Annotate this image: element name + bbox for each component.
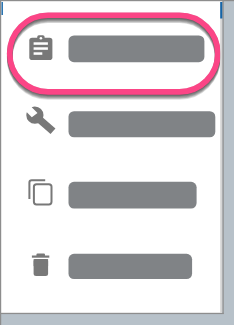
button[interactable]: Delete: [1, 236, 220, 298]
button[interactable]: Copy: [1, 164, 220, 226]
button[interactable]: Settings: [1, 93, 220, 155]
button[interactable]: Notes: [1, 17, 220, 79]
